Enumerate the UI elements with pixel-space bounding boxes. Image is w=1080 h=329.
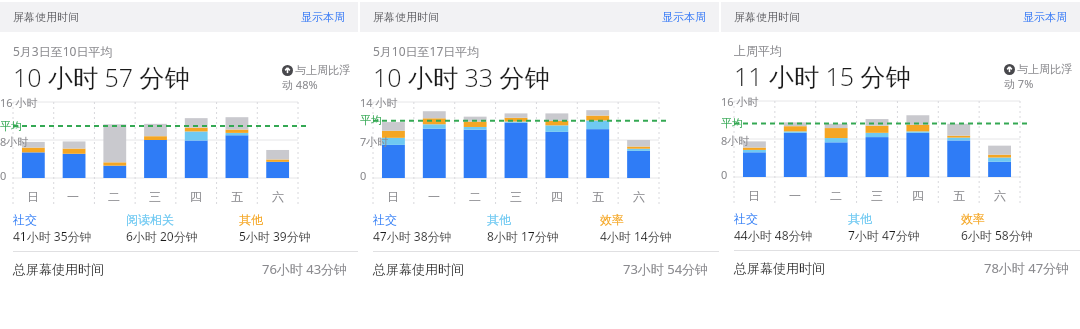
staticText: 0 xyxy=(0,168,7,183)
staticText: 动 48% xyxy=(282,77,318,92)
staticText: 效率 xyxy=(600,212,624,227)
staticText: 一 xyxy=(67,189,79,204)
button[interactable]: 阅读相关 xyxy=(126,212,239,244)
button[interactable]: 显示本周 xyxy=(301,10,345,24)
staticText: 41小时 35分钟 xyxy=(13,228,92,244)
staticText: 二 xyxy=(469,189,481,204)
staticText: 76小时 43分钟 xyxy=(262,260,348,278)
staticText: 日 xyxy=(748,188,760,203)
button[interactable]: 效率 xyxy=(600,212,713,244)
button[interactable]: 社交 xyxy=(734,211,848,243)
staticText: 8小时 17分钟 xyxy=(487,228,559,244)
staticText: 总屏幕使用时间 xyxy=(734,260,825,276)
staticText: 日 xyxy=(387,189,399,204)
staticText: 六 xyxy=(272,189,284,204)
staticText: 四 xyxy=(912,188,924,203)
staticText: 5小时 39分钟 xyxy=(239,228,311,244)
staticText: 总屏幕使用时间 xyxy=(13,261,104,277)
staticText: 六 xyxy=(994,188,1006,203)
staticText: 四 xyxy=(551,189,563,204)
staticText: 三 xyxy=(149,189,161,204)
button[interactable]: 其他 xyxy=(239,212,352,244)
button[interactable]: 总屏幕使用时间 xyxy=(13,260,348,278)
button[interactable]: 屏幕使用时间 xyxy=(360,2,719,32)
staticText: 44小时 48分钟 xyxy=(734,227,813,243)
staticText: 一 xyxy=(789,188,801,203)
staticText: 8小时 xyxy=(0,134,29,149)
staticText: 五 xyxy=(231,189,243,204)
staticText: 6小时 20分钟 xyxy=(126,228,198,244)
staticText: 二 xyxy=(108,189,120,204)
staticText: 四 xyxy=(190,189,202,204)
staticText: 7小时 xyxy=(360,134,389,149)
staticText: 效率 xyxy=(961,211,985,226)
staticText: 社交 xyxy=(13,212,37,227)
staticText: 4小时 14分钟 xyxy=(600,228,672,244)
staticText: 5月3日至10日平均 xyxy=(13,43,113,59)
staticText: 五 xyxy=(592,189,604,204)
staticText: 显示本周 xyxy=(662,10,706,24)
staticText: 显示本周 xyxy=(301,10,345,24)
staticText: 14 小时 xyxy=(360,95,398,110)
staticText: 0 xyxy=(721,167,728,182)
staticText: 二 xyxy=(830,188,842,203)
staticText: 五 xyxy=(953,188,965,203)
staticText: 上周平均 xyxy=(734,43,782,58)
staticText: 六 xyxy=(633,189,645,204)
staticText: 8小时 xyxy=(721,133,750,148)
staticText: 5月10日至17日平均 xyxy=(373,43,480,59)
staticText: 与上周比浮 xyxy=(295,63,350,77)
button[interactable]: 屏幕使用时间 xyxy=(0,2,358,32)
button[interactable]: 其他 xyxy=(487,212,600,244)
button[interactable]: 显示本周 xyxy=(1023,10,1067,24)
staticText: 屏幕使用时间 xyxy=(13,10,79,24)
staticText: 平均 xyxy=(360,113,382,127)
button[interactable]: 效率 xyxy=(961,211,1074,243)
button[interactable]: 社交 xyxy=(373,212,487,244)
staticText: 其他 xyxy=(848,211,872,226)
staticText: 社交 xyxy=(373,212,397,227)
staticText: 11 小时 15 分钟 xyxy=(734,59,911,93)
staticText: 阅读相关 xyxy=(126,212,174,227)
staticText: 屏幕使用时间 xyxy=(373,10,439,24)
staticText: 7小时 47分钟 xyxy=(848,227,920,243)
staticText: 73小时 54分钟 xyxy=(623,260,709,278)
button[interactable]: 总屏幕使用时间 xyxy=(373,260,709,278)
button[interactable]: 显示本周 xyxy=(662,10,706,24)
staticText: 16 小时 xyxy=(721,94,759,109)
button[interactable]: 屏幕使用时间 xyxy=(721,2,1080,32)
staticText: 78小时 47分钟 xyxy=(984,259,1070,277)
staticText: 平均 xyxy=(0,119,22,133)
staticText: 6小时 58分钟 xyxy=(961,227,1033,243)
staticText: 10 小时 57 分钟 xyxy=(13,60,190,94)
staticText: 与上周比浮 xyxy=(1017,62,1072,76)
staticText: 16 小时 xyxy=(0,95,38,110)
staticText: 10 小时 33 分钟 xyxy=(373,60,550,94)
button[interactable]: 其他 xyxy=(848,211,961,243)
staticText: 日 xyxy=(27,189,39,204)
staticText: 其他 xyxy=(239,212,263,227)
staticText: 平均 xyxy=(721,116,743,130)
staticText: 屏幕使用时间 xyxy=(734,10,800,24)
button[interactable]: 社交 xyxy=(13,212,126,244)
button[interactable]: 总屏幕使用时间 xyxy=(734,259,1070,277)
staticText: 动 7% xyxy=(1004,76,1034,91)
staticText: 一 xyxy=(428,189,440,204)
staticText: 0 xyxy=(360,168,367,183)
staticText: 三 xyxy=(871,188,883,203)
staticText: 总屏幕使用时间 xyxy=(373,261,464,277)
staticText: 社交 xyxy=(734,211,758,226)
staticText: 47小时 38分钟 xyxy=(373,228,452,244)
staticText: 其他 xyxy=(487,212,511,227)
staticText: 显示本周 xyxy=(1023,10,1067,24)
staticText: 三 xyxy=(510,189,522,204)
